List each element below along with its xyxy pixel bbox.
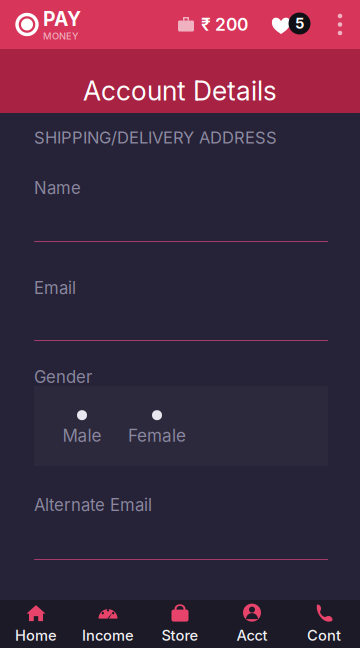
button[interactable]: PayMoney — [0, 0, 81, 49]
staticText: ₹ 200 — [201, 14, 248, 35]
staticText: Home — [15, 627, 57, 644]
button[interactable]: Female — [128, 407, 186, 444]
staticText: Gender — [34, 367, 92, 387]
staticText: Cont — [307, 627, 341, 644]
staticText: Income — [82, 627, 134, 644]
button[interactable]: Acct — [216, 600, 288, 648]
staticText: SHIPPING/DELIVERY ADDRESS — [34, 127, 277, 147]
staticText: Acct — [236, 627, 267, 644]
button[interactable]: Male — [62, 407, 101, 444]
staticText: Male — [62, 425, 101, 446]
button[interactable]: Store — [144, 600, 216, 648]
button[interactable]: Cont — [288, 600, 360, 648]
staticText: Female — [128, 425, 186, 446]
button[interactable]: Wallet balance 200 rupees — [178, 0, 248, 49]
button[interactable]: More options — [329, 0, 351, 49]
button[interactable]: Home — [0, 600, 72, 648]
staticText: PAY — [43, 7, 81, 31]
staticText: Email — [34, 278, 76, 298]
staticText: Alternate Email — [34, 495, 152, 515]
staticText: 5 — [295, 15, 304, 32]
staticText: Name — [34, 178, 81, 198]
staticText: Store — [161, 627, 198, 644]
button[interactable]: Favourites, 5 items — [263, 0, 302, 49]
staticText: MONEY — [43, 30, 78, 42]
staticText: Account Details — [83, 75, 277, 107]
button[interactable]: Income — [72, 600, 144, 648]
